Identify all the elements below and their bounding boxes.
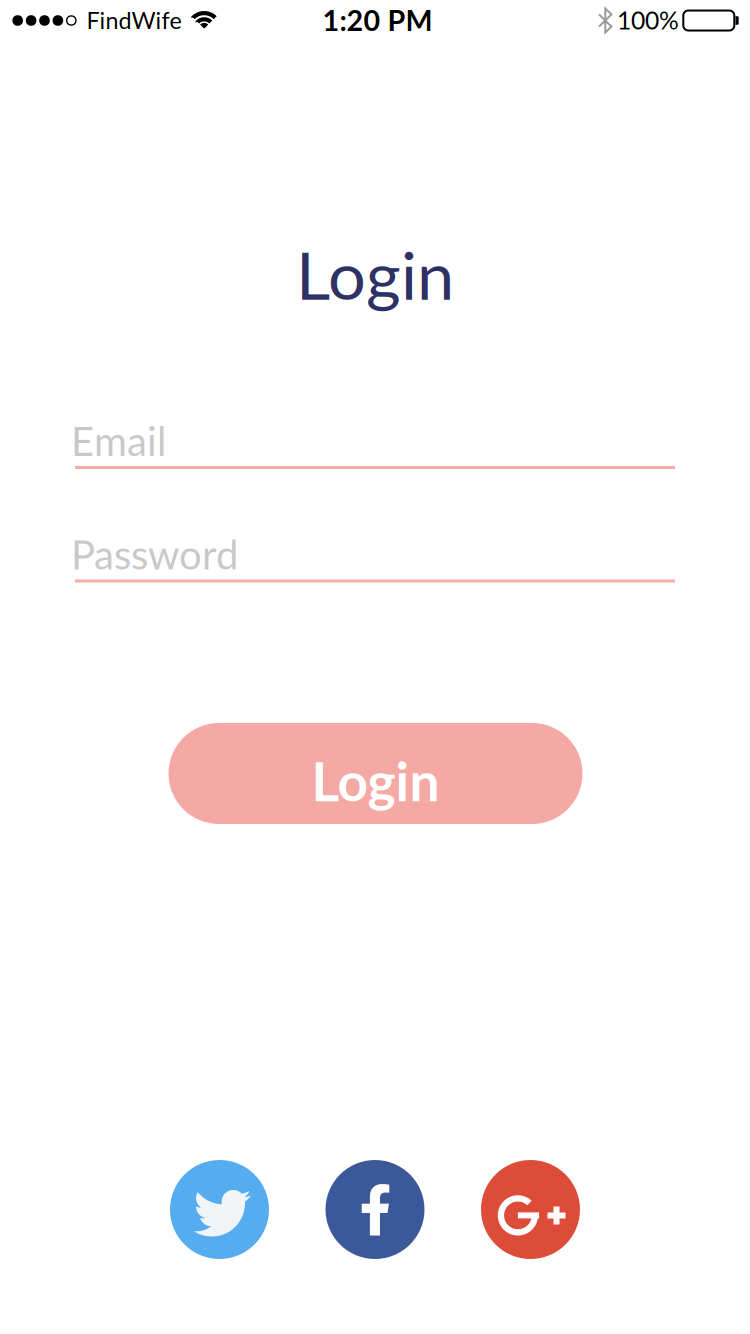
staticText: Login [296,234,454,314]
staticText: 1:20 PM [322,3,432,37]
staticText: Password [71,530,238,578]
staticText: 100% [617,5,679,35]
button[interactable]: Email [75,411,675,471]
staticText: Login [311,748,439,812]
button[interactable]: Password [75,524,675,584]
button[interactable]: Sign in with Google [481,1160,580,1259]
button[interactable]: Login [168,723,582,824]
button[interactable]: Sign in with Facebook [325,1160,424,1259]
staticText: FindWife [86,6,181,34]
staticText: Email [71,416,166,464]
button[interactable]: Sign in with Twitter [170,1160,269,1259]
